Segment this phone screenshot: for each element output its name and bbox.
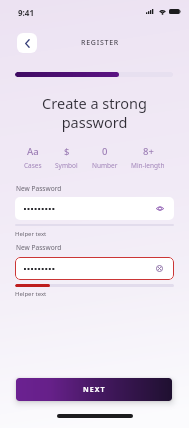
staticText: 8+ [143,145,154,158]
staticText: 9:41 [18,7,34,18]
staticText: Number [92,161,118,170]
button[interactable]: NEXT [16,378,172,401]
staticText: Create a strong password [0,93,189,132]
staticText: New Password [16,184,62,193]
staticText: Symbol [55,161,78,170]
button[interactable]: Clear [154,263,165,274]
staticText: 0 [102,145,108,158]
staticText: Min-length [131,161,165,170]
button[interactable]: Show password [154,203,165,214]
staticText: $ [64,145,70,158]
staticText: Helper text [15,290,47,298]
button[interactable]: Back [17,33,37,53]
staticText: NEXT [83,385,106,395]
staticText: Cases [24,161,42,170]
button[interactable]: Show password [15,197,174,220]
staticText: REGISTER [81,38,119,48]
staticText: Aa [27,145,39,158]
button[interactable]: Clear [15,257,174,280]
staticText: New Password [16,243,62,252]
staticText: Helper text [15,230,47,238]
